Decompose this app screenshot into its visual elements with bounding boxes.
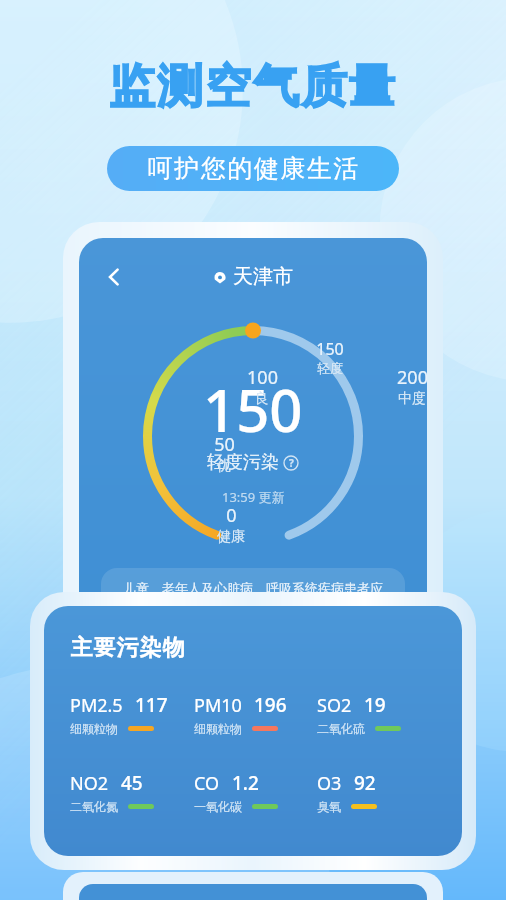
staticText: 117 (135, 692, 168, 718)
staticText: 轻度 (317, 360, 343, 376)
staticText: 二氧化硫 (317, 721, 365, 736)
button[interactable]: PM2.5 (70, 692, 194, 736)
staticText: 45 (121, 770, 143, 796)
staticText: 良 (255, 390, 269, 408)
staticText: ? (289, 456, 294, 470)
button[interactable]: SO2 (317, 692, 440, 736)
staticText: PM2.5 (70, 693, 123, 718)
staticText: O3 (317, 771, 342, 796)
staticText: 优 (217, 457, 231, 475)
staticText: PM10 (194, 693, 242, 718)
staticText: 天津市 (233, 264, 293, 289)
button[interactable]: PM10 (194, 692, 317, 736)
button[interactable]: O3 (317, 770, 440, 814)
button[interactable]: Back (97, 260, 131, 294)
staticText: 196 (254, 692, 287, 718)
staticText: SO2 (317, 693, 352, 718)
staticText: 健康 (217, 528, 245, 546)
staticText: 100 (247, 365, 278, 390)
button[interactable]: CO (194, 770, 317, 814)
staticText: 150 (203, 370, 303, 449)
staticText: 150 (316, 338, 344, 360)
staticText: 一氧化碳 (194, 799, 242, 814)
staticText: 0 (226, 503, 237, 528)
staticText: 儿童、老年人及心脏病、呼吸系统疾病患者应 (123, 580, 383, 596)
staticText: NO2 (70, 771, 109, 796)
staticText: 19 (364, 692, 386, 718)
staticText: 监测空气质量 (0, 58, 506, 116)
staticText: 92 (354, 770, 376, 796)
button[interactable]: 呵护您的健康生活 (107, 146, 399, 191)
staticText: 轻度污染 (207, 451, 279, 474)
staticText: CO (194, 771, 220, 796)
staticText: 200 (397, 365, 427, 390)
button[interactable]: 儿童、老年人及心脏病、呼吸系统疾病患者应 (101, 568, 405, 622)
staticText: 主要污染物 (70, 634, 185, 662)
staticText: 13:59 更新 (222, 488, 285, 506)
staticText: 细颗粒物 (70, 721, 118, 736)
staticText: 细颗粒物 (194, 721, 242, 736)
staticText: 50 (214, 432, 235, 457)
button[interactable]: NO2 (70, 770, 194, 814)
staticText: 二氧化氮 (70, 799, 118, 814)
staticText: 中度 (398, 390, 426, 408)
staticText: 臭氧 (317, 799, 341, 814)
staticText: 1.2 (232, 770, 259, 796)
button[interactable]: Info (283, 455, 299, 471)
staticText: 呵护您的健康生活 (147, 153, 359, 184)
